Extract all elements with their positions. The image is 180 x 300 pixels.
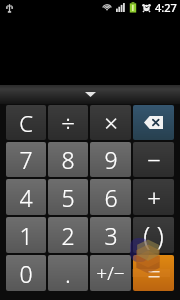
staticText: 4:27 bbox=[155, 0, 177, 15]
staticText: . bbox=[65, 257, 71, 290]
staticText: ( ) bbox=[143, 218, 164, 252]
button[interactable]: × bbox=[90, 105, 131, 140]
staticText: 3 bbox=[104, 220, 118, 251]
button[interactable]: ÷ bbox=[48, 105, 88, 140]
button[interactable]: 5 bbox=[48, 179, 88, 215]
button[interactable]: 8 bbox=[48, 142, 88, 177]
button[interactable]: . bbox=[48, 255, 88, 291]
button[interactable]: 3 bbox=[90, 217, 131, 253]
staticText: × bbox=[104, 106, 118, 139]
staticText: + bbox=[147, 181, 161, 214]
staticText: 7 bbox=[19, 144, 33, 175]
button[interactable]: 7 bbox=[6, 142, 46, 177]
button[interactable]: ( ) bbox=[133, 217, 174, 253]
button[interactable]: 1 bbox=[6, 217, 46, 253]
staticText: 0 bbox=[19, 258, 33, 289]
staticText: = bbox=[147, 258, 161, 289]
button[interactable]: 4 bbox=[6, 179, 46, 215]
staticText: 5 bbox=[61, 182, 75, 213]
button[interactable]: 2 bbox=[48, 217, 88, 253]
button[interactable]: = bbox=[133, 255, 174, 291]
button[interactable]: 0 bbox=[6, 255, 46, 291]
staticText: 9 bbox=[104, 144, 118, 175]
button[interactable]: +/− bbox=[90, 255, 131, 291]
staticText: 2 bbox=[61, 220, 75, 251]
staticText: − bbox=[147, 143, 161, 176]
staticText: C bbox=[19, 108, 33, 138]
staticText: 8 bbox=[61, 144, 75, 175]
button[interactable]: + bbox=[133, 179, 174, 215]
staticText: +/− bbox=[96, 260, 125, 286]
staticText: 4 bbox=[19, 182, 33, 213]
button[interactable]: Delete bbox=[133, 105, 174, 140]
staticText: ÷ bbox=[61, 106, 75, 139]
button[interactable]: 6 bbox=[90, 179, 131, 215]
button[interactable]: − bbox=[133, 142, 174, 177]
staticText: 6 bbox=[104, 182, 118, 213]
staticText: 1 bbox=[19, 220, 33, 251]
button[interactable]: C bbox=[6, 105, 46, 140]
button[interactable]: Show history bbox=[0, 85, 180, 104]
button[interactable]: 9 bbox=[90, 142, 131, 177]
